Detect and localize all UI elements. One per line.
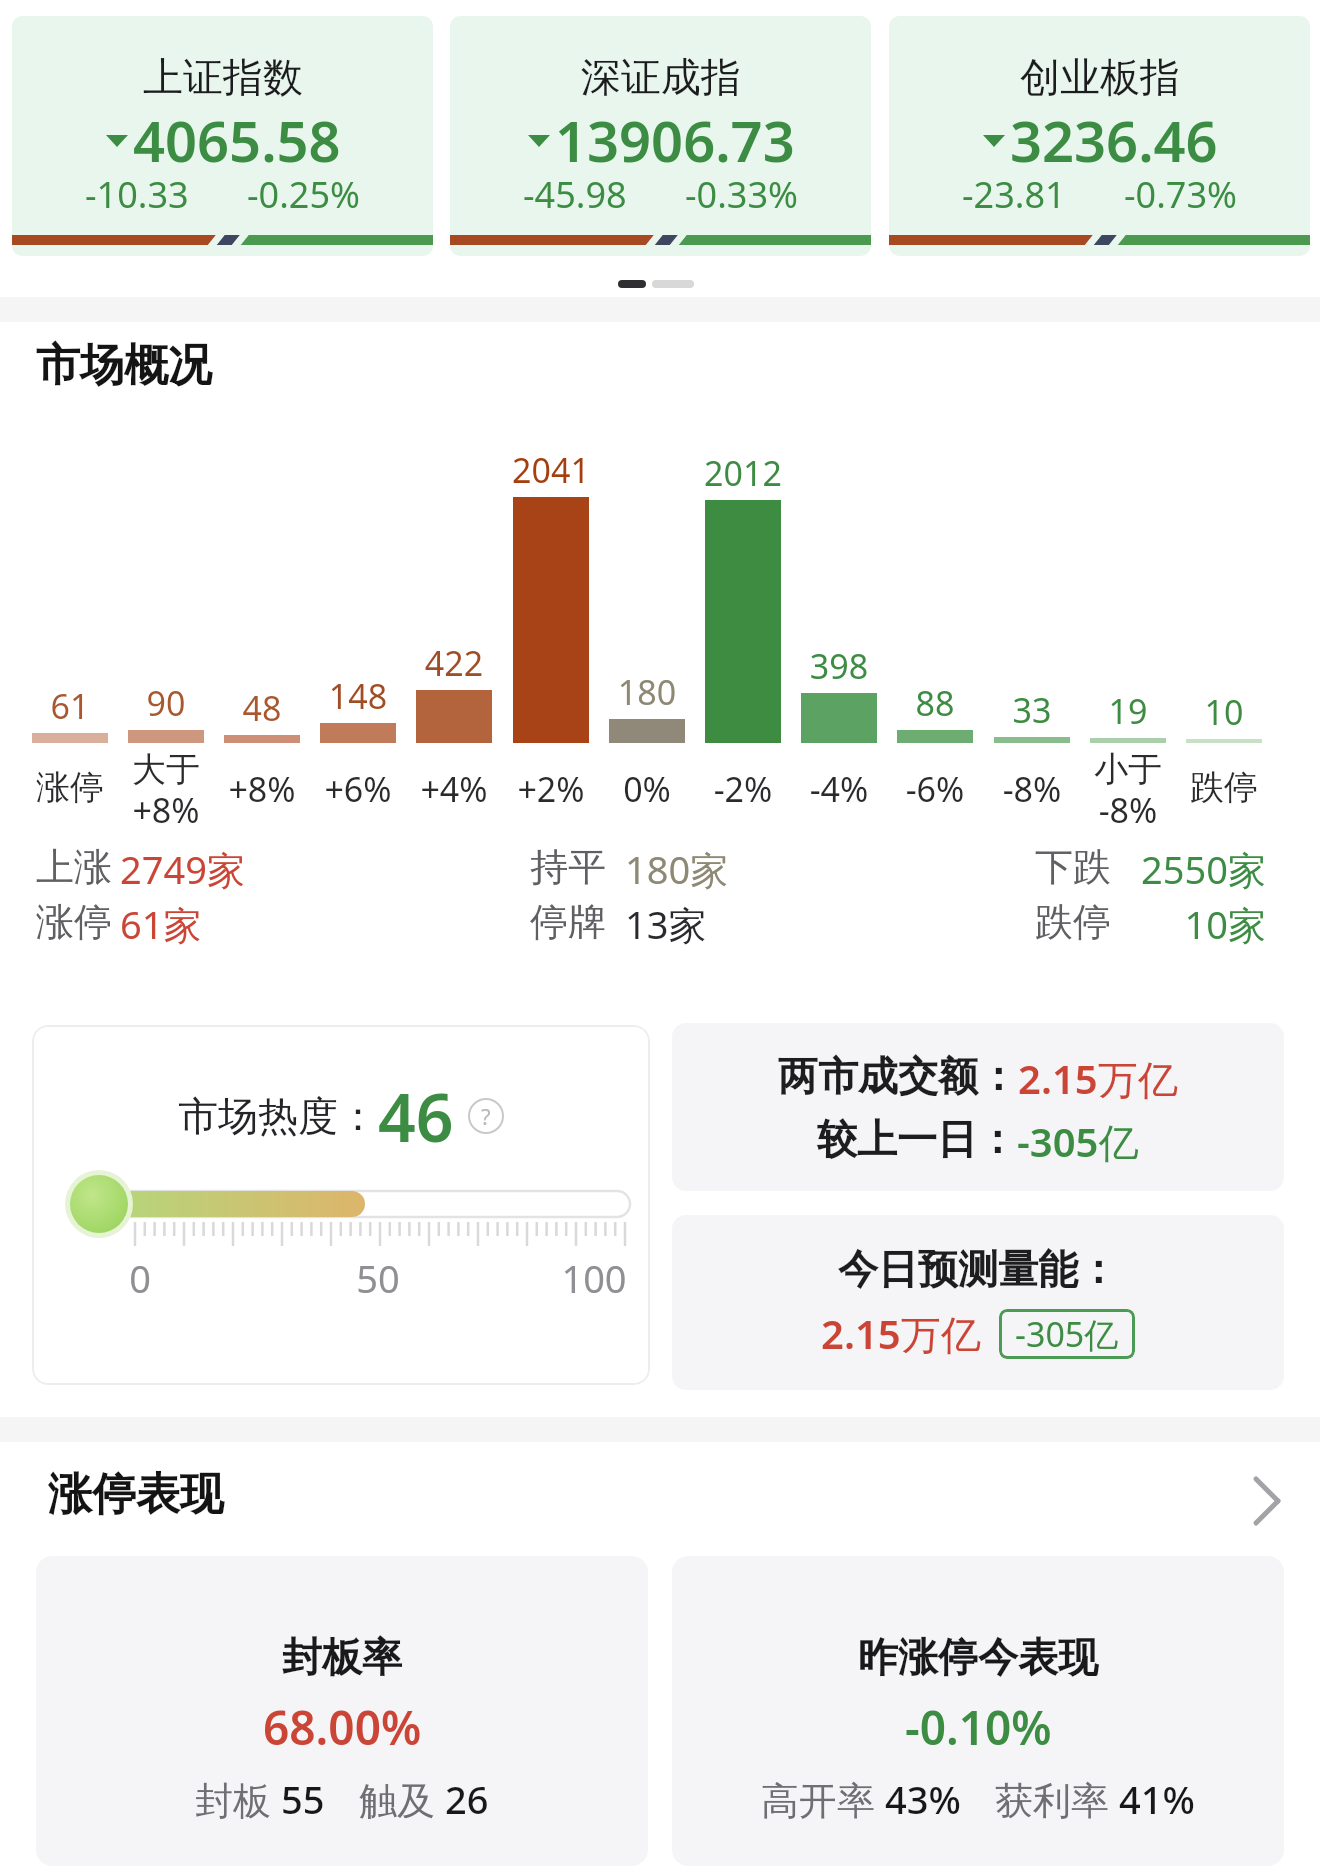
staticText: -0.25%: [247, 170, 360, 219]
staticText: -0.73%: [1124, 170, 1237, 219]
staticText: 33: [962, 687, 1102, 733]
staticText: 3236.46: [1010, 102, 1218, 178]
staticText: 涨停: [36, 898, 112, 946]
staticText: 封板: [195, 1773, 281, 1825]
staticText: 0%: [577, 766, 717, 812]
staticText: 4065.58: [133, 102, 341, 178]
staticText: 今日预测量能：: [838, 1244, 1118, 1294]
staticText: 48: [192, 685, 332, 731]
staticText: +6%: [288, 766, 428, 812]
staticText: 2550家: [1026, 843, 1266, 895]
staticText: 61: [0, 683, 140, 729]
staticText: -2%: [673, 766, 813, 812]
button[interactable]: 封板率: [36, 1556, 648, 1866]
staticText: 触及: [359, 1773, 445, 1825]
staticText: 较上一日：: [817, 1114, 1017, 1164]
staticText: +8%: [192, 766, 332, 812]
staticText: 2.15万亿: [821, 1306, 981, 1361]
staticText: -0.10%: [905, 1696, 1052, 1759]
staticText: 2012: [673, 450, 813, 496]
staticText: 13家: [625, 898, 707, 950]
staticText: 深证成指: [581, 52, 741, 102]
staticText: 高开率: [761, 1773, 885, 1825]
button[interactable]: 昨涨停今表现: [672, 1556, 1284, 1866]
staticText: 90: [96, 680, 236, 726]
staticText: 398: [769, 643, 909, 689]
staticText: 10家: [1026, 898, 1266, 950]
staticText: 19: [1058, 688, 1198, 734]
staticText: -305亿: [1015, 1311, 1119, 1357]
staticText: 获利率: [995, 1773, 1119, 1825]
staticText: 46: [378, 1071, 454, 1161]
staticText: -10.33: [85, 170, 189, 219]
staticText: 0: [100, 1252, 180, 1304]
staticText: 2041: [481, 447, 621, 493]
button[interactable]: 涨停表现: [0, 1455, 1320, 1545]
staticText: 50: [338, 1252, 418, 1304]
staticText: 上证指数: [143, 52, 303, 102]
staticText: 两市成交额：: [778, 1051, 1018, 1101]
staticText: 26: [445, 1773, 489, 1825]
staticText: 下跌: [1035, 843, 1111, 891]
button[interactable]: 深证成指: [450, 16, 871, 256]
staticText: 2.15万亿: [1018, 1051, 1178, 1106]
staticText: 涨停: [0, 766, 140, 809]
button[interactable]: 两市成交额：: [672, 1023, 1284, 1191]
staticText: 180家: [625, 843, 729, 895]
staticText: 跌停: [1035, 898, 1111, 946]
button[interactable]: 上证指数: [12, 16, 433, 256]
staticText: 2749家: [120, 843, 245, 895]
staticText: -305亿: [1017, 1114, 1139, 1169]
staticText: 68.00%: [263, 1696, 422, 1759]
staticText: 43%: [885, 1773, 961, 1825]
button[interactable]: 今日预测量能：: [672, 1215, 1284, 1390]
button[interactable]: 市场热度：: [32, 1025, 650, 1385]
staticText: +2%: [481, 766, 621, 812]
staticText: -23.81: [962, 170, 1066, 219]
staticText: 小于 -8%: [1058, 748, 1198, 833]
staticText: 100: [554, 1252, 634, 1304]
staticText: 41%: [1119, 1773, 1195, 1825]
staticText: 61家: [120, 898, 202, 950]
staticText: +4%: [384, 766, 524, 812]
staticText: 148: [288, 673, 428, 719]
staticText: 55: [281, 1773, 325, 1825]
staticText: 持平: [530, 843, 606, 891]
staticText: 88: [865, 680, 1005, 726]
staticText: 封板率: [282, 1632, 402, 1682]
staticText: 大于 +8%: [96, 748, 236, 833]
staticText: -6%: [865, 766, 1005, 812]
staticText: -4%: [769, 766, 909, 812]
staticText: 停牌: [530, 898, 606, 946]
staticText: 涨停表现: [48, 1467, 224, 1522]
staticText: 创业板指: [1020, 52, 1180, 102]
staticText: 市场热度：: [178, 1091, 378, 1141]
staticText: -45.98: [523, 170, 627, 219]
staticText: 市场概况: [36, 338, 212, 393]
staticText: 昨涨停今表现: [858, 1632, 1098, 1682]
staticText: 180: [577, 669, 717, 715]
staticText: ?: [481, 1101, 491, 1131]
button[interactable]: 创业板指: [889, 16, 1310, 256]
staticText: 上涨: [36, 843, 112, 891]
staticText: -0.33%: [685, 170, 798, 219]
staticText: -8%: [962, 766, 1102, 812]
staticText: 422: [384, 640, 524, 686]
staticText: 跌停: [1154, 766, 1294, 809]
staticText: 13906.73: [555, 102, 795, 178]
staticText: 10: [1154, 689, 1294, 735]
